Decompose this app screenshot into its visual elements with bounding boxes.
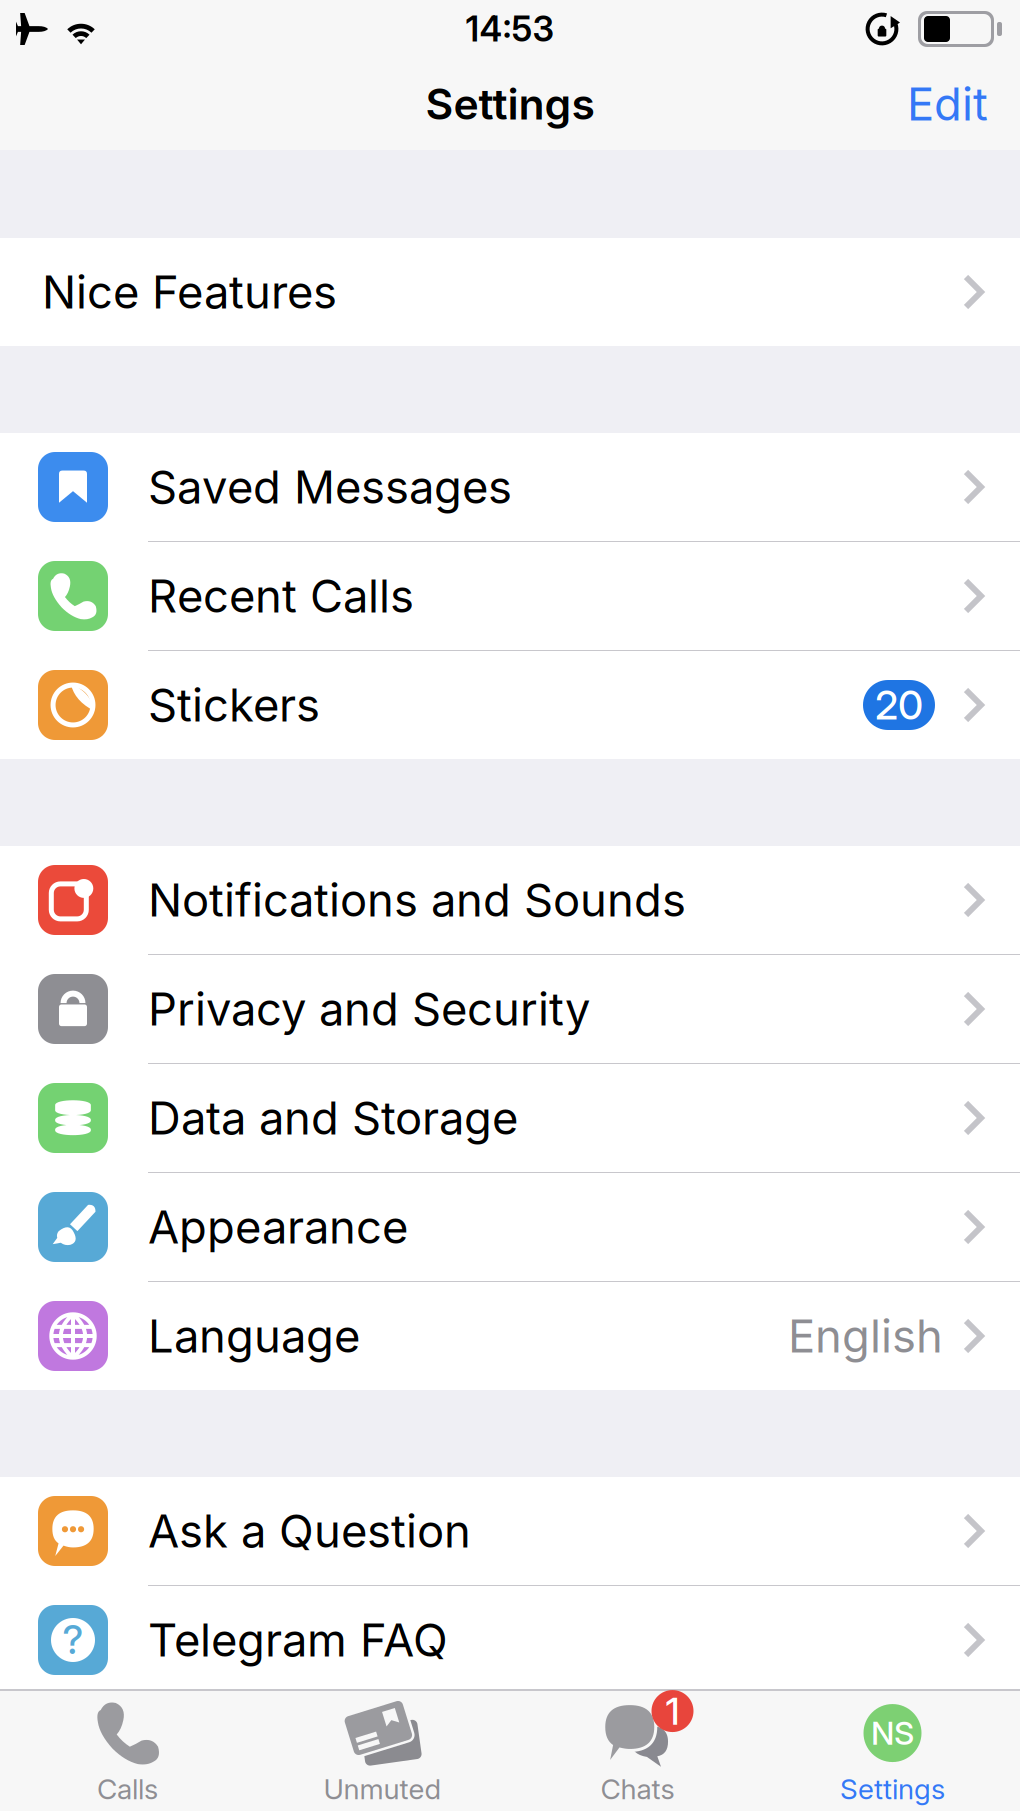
staticText: Language	[148, 1309, 360, 1363]
staticText: 14:53	[465, 8, 554, 50]
staticText: Calls	[97, 1772, 158, 1806]
button[interactable]: Edit	[907, 58, 1020, 150]
button[interactable]: Saved Messages	[0, 433, 1020, 541]
staticText: Settings	[425, 78, 594, 130]
button[interactable]: Data and Storage	[0, 1064, 1020, 1172]
button[interactable]: ?	[0, 1586, 1020, 1694]
button[interactable]: Language	[0, 1282, 1020, 1390]
button[interactable]: Calls	[0, 1691, 255, 1811]
button[interactable]: 1	[510, 1691, 765, 1811]
staticText: Privacy and Security	[148, 982, 590, 1036]
staticText: Notifications and Sounds	[148, 873, 686, 927]
button[interactable]: Notifications and Sounds	[0, 846, 1020, 954]
staticText: 20	[875, 681, 923, 729]
button[interactable]: Unmuted	[255, 1691, 510, 1811]
staticText: Recent Calls	[148, 569, 414, 623]
button[interactable]: Nice Features	[0, 238, 1020, 346]
staticText: Chats	[600, 1772, 674, 1806]
staticText: Telegram FAQ	[148, 1613, 448, 1667]
staticText: Settings	[840, 1772, 945, 1806]
button[interactable]: Recent Calls	[0, 542, 1020, 650]
staticText: English	[788, 1309, 943, 1363]
staticText: Appearance	[148, 1200, 408, 1254]
staticText: Stickers	[148, 678, 320, 732]
staticText: ?	[62, 1617, 83, 1663]
staticText: Ask a Question	[148, 1504, 471, 1558]
button[interactable]: Appearance	[0, 1173, 1020, 1281]
staticText: Data and Storage	[148, 1091, 518, 1145]
staticText: Edit	[907, 77, 988, 131]
button[interactable]: Stickers	[0, 651, 1020, 759]
staticText: Saved Messages	[148, 460, 512, 514]
staticText: Unmuted	[323, 1772, 441, 1806]
staticText: NS	[871, 1714, 914, 1752]
staticText: 1	[665, 1688, 679, 1734]
button[interactable]: NS	[765, 1691, 1020, 1811]
button[interactable]: Privacy and Security	[0, 955, 1020, 1063]
staticText: Nice Features	[42, 265, 337, 319]
button[interactable]: Ask a Question	[0, 1477, 1020, 1585]
